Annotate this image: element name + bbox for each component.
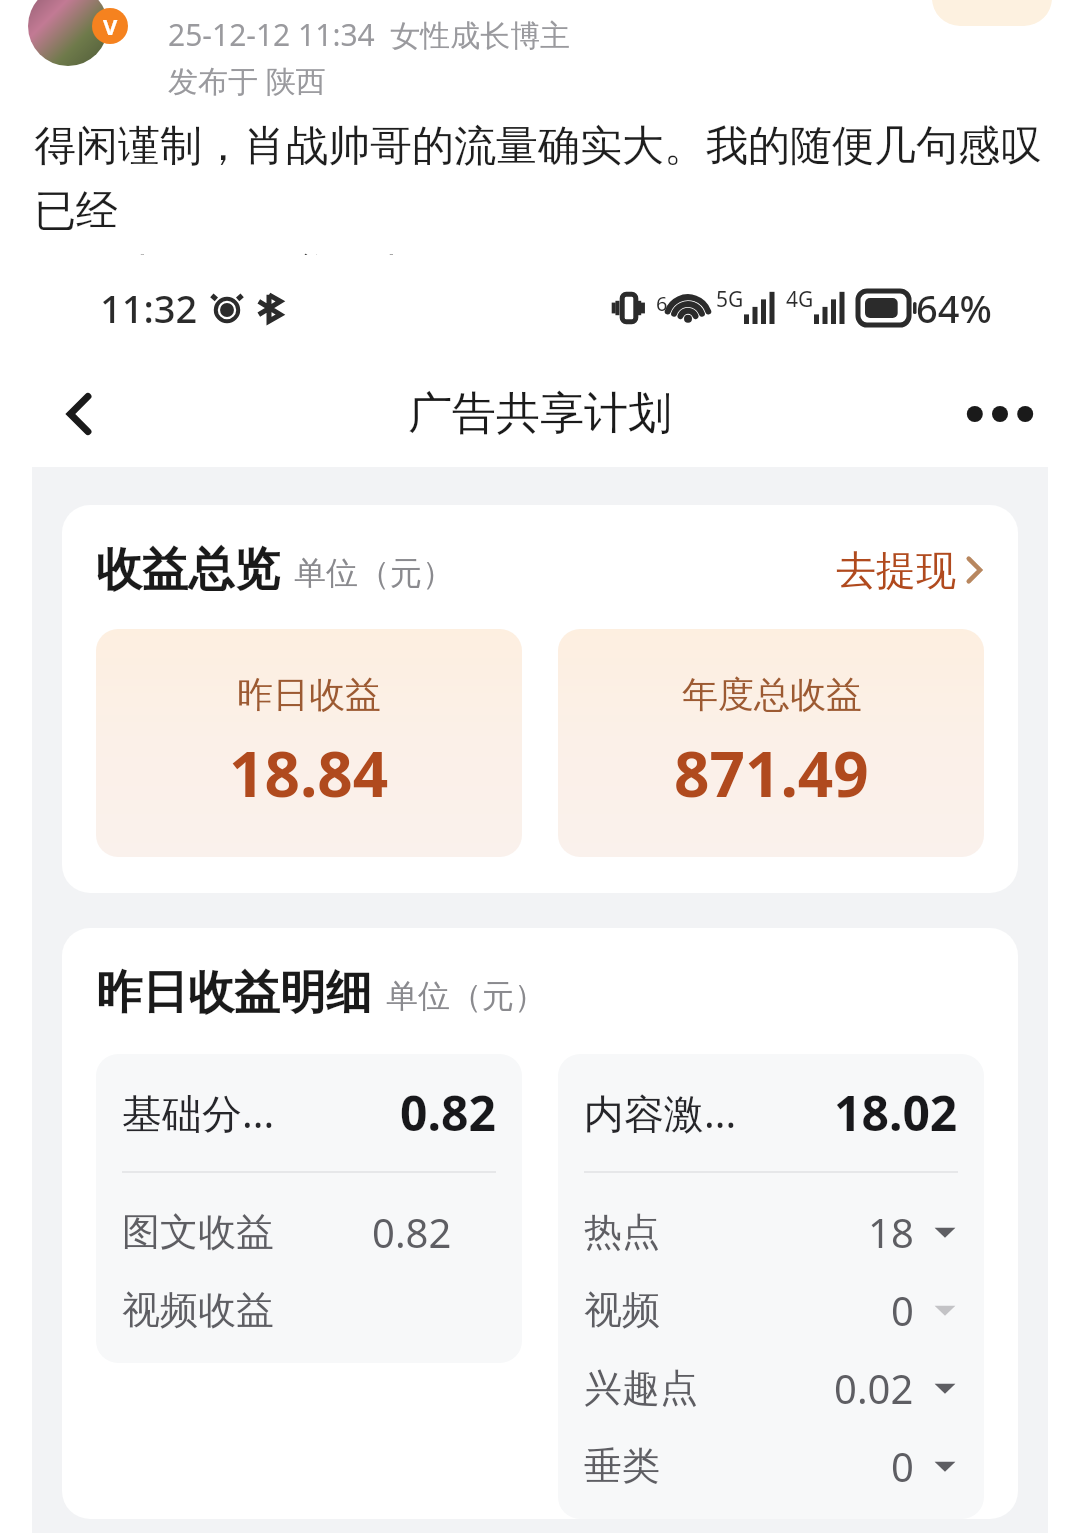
staticText: 视频 xyxy=(584,1286,660,1334)
staticText: 年度总收益 xyxy=(682,672,862,717)
staticText: 去提现 xyxy=(836,545,956,595)
staticText: 0.02 xyxy=(834,1361,914,1415)
button[interactable]: Avatar xyxy=(28,0,108,66)
staticText: 18.84 xyxy=(229,731,389,815)
staticText: 昨日收益 xyxy=(237,672,381,717)
staticText: 广告共享计划 xyxy=(408,386,672,441)
button[interactable]: Back xyxy=(40,374,120,454)
staticText: 得闲谨制，肖战帅哥的流量确实大。我的随便几句感叹已经 已经快把票钱赚回来了。 xyxy=(34,120,1054,301)
staticText: 单位（元） xyxy=(294,553,454,593)
button[interactable]: 基础分... xyxy=(122,1054,496,1363)
staticText: 0 xyxy=(891,1439,914,1493)
staticText: 871.49 xyxy=(674,731,869,815)
staticText: 昨日收益明细 xyxy=(96,964,372,1022)
button[interactable]: Follow xyxy=(932,0,1052,26)
staticText: 25-12-12 11:34 女性成长博主 xyxy=(168,14,571,55)
staticText: 图文收益 xyxy=(122,1208,274,1256)
button[interactable]: 内容激... xyxy=(584,1054,958,1519)
staticText: 4G xyxy=(786,285,814,314)
staticText: 18.02 xyxy=(834,1080,958,1145)
staticText: 热点 xyxy=(584,1208,660,1256)
staticText: 收益总览 xyxy=(96,541,280,599)
staticText: 兴趣点 xyxy=(584,1364,698,1412)
staticText: 发布于 陕西 xyxy=(168,60,326,101)
staticText: 5G xyxy=(716,285,744,314)
staticText: 内容激... xyxy=(584,1085,737,1140)
staticText: 18 xyxy=(868,1205,914,1259)
staticText: 垂类 xyxy=(584,1442,660,1490)
button[interactable]: 昨日收益 xyxy=(96,629,522,857)
button[interactable]: 去提现 xyxy=(836,545,984,595)
staticText: 0.82 xyxy=(400,1080,496,1145)
button[interactable]: More options xyxy=(960,374,1040,454)
staticText: 0 xyxy=(891,1283,914,1337)
staticText: 11:32 xyxy=(100,282,198,334)
staticText: 视频收益 xyxy=(122,1286,274,1334)
button[interactable]: 年度总收益 xyxy=(558,629,984,857)
staticText: 单位（元） xyxy=(386,976,546,1016)
staticText: 0.82 xyxy=(372,1205,452,1259)
staticText: 6 xyxy=(656,290,668,317)
staticText: 基础分... xyxy=(122,1085,275,1140)
staticText: 64% xyxy=(916,282,992,334)
staticText: V xyxy=(103,11,118,41)
